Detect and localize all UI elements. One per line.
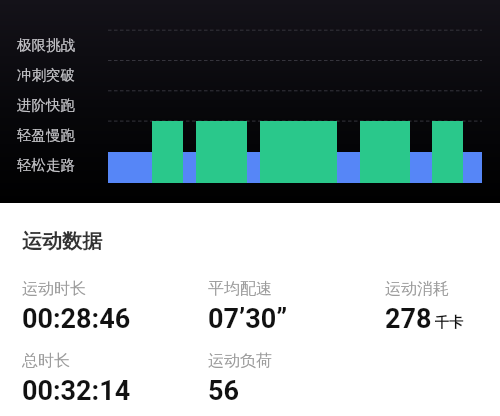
staticText: 运动消耗 <box>385 279 449 299</box>
staticText: 运动数据 <box>22 229 102 254</box>
button[interactable]: 总时长 <box>22 351 131 407</box>
button[interactable]: 运动负荷 <box>208 351 272 407</box>
staticText: 07’30” <box>208 303 288 335</box>
staticText: 278 <box>385 303 432 335</box>
staticText: 进阶快跑 <box>17 96 75 114</box>
staticText: 56 <box>208 375 239 407</box>
staticText: 总时长 <box>22 351 70 371</box>
staticText: 00:32:14 <box>22 375 131 407</box>
staticText: 千卡 <box>435 314 463 332</box>
button[interactable]: 运动消耗 <box>385 279 463 335</box>
button[interactable]: 运动时长 <box>22 279 131 335</box>
button[interactable]: 心率区间图表 <box>0 0 500 203</box>
staticText: 运动负荷 <box>208 351 272 371</box>
staticText: 00:28:46 <box>22 303 131 335</box>
staticText: 极限挑战 <box>17 36 75 54</box>
staticText: 平均配速 <box>208 279 272 299</box>
button[interactable]: 平均配速 <box>208 279 288 335</box>
staticText: 轻松走路 <box>17 156 75 174</box>
staticText: 冲刺突破 <box>17 66 75 84</box>
staticText: 运动时长 <box>22 279 86 299</box>
staticText: 轻盈慢跑 <box>17 126 75 144</box>
